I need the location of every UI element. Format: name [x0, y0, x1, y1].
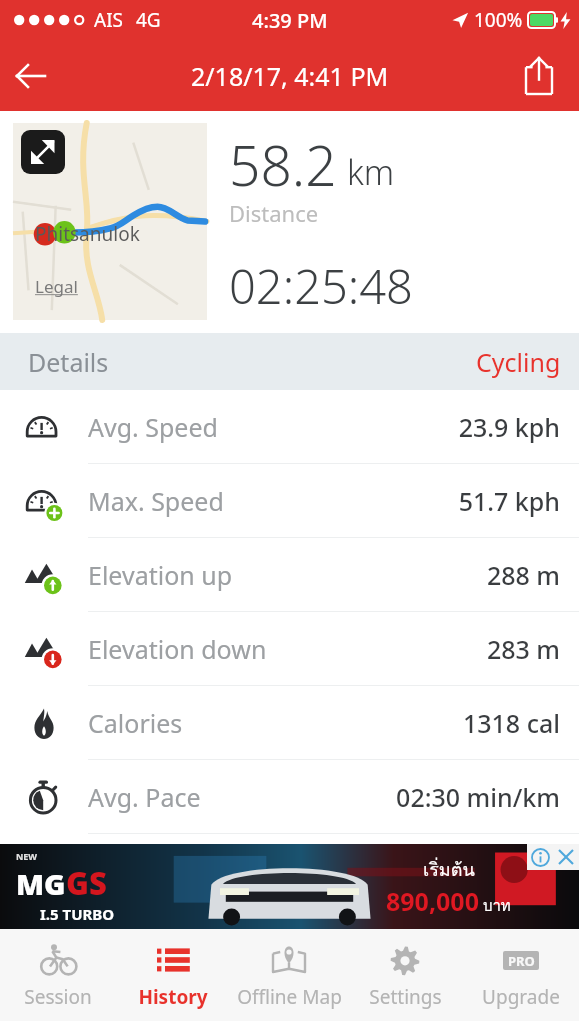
- staticText: Cycling: [476, 345, 561, 379]
- button[interactable]: Avg. Speed: [0, 390, 579, 463]
- staticText: Phitsanulok: [35, 221, 140, 247]
- button[interactable]: Elevation up: [0, 538, 579, 611]
- staticText: 100%: [474, 7, 523, 33]
- staticText: GS: [66, 862, 107, 904]
- staticText: Legal: [35, 275, 78, 298]
- staticText: 51.7 kph: [458, 484, 560, 518]
- button[interactable]: Elevation down: [0, 612, 579, 685]
- staticText: Session: [24, 984, 92, 1010]
- staticText: NEW: [16, 850, 38, 862]
- staticText: Details: [28, 345, 109, 379]
- staticText: Elevation down: [88, 632, 267, 666]
- button[interactable]: Close ad: [553, 844, 579, 870]
- staticText: 02:30 min/km: [396, 780, 560, 814]
- button[interactable]: Ad information: [527, 844, 553, 870]
- staticText: Avg. Pace: [88, 780, 201, 814]
- button[interactable]: Max. Speed: [0, 464, 579, 537]
- staticText: Upgrade: [482, 984, 560, 1010]
- staticText: Distance: [229, 198, 319, 228]
- staticText: 890,000: [386, 884, 479, 918]
- button[interactable]: PRO: [463, 929, 579, 1021]
- button[interactable]: History: [115, 929, 231, 1021]
- staticText: PRO: [508, 952, 535, 970]
- staticText: บาท: [479, 894, 511, 918]
- button[interactable]: Route map: [13, 123, 207, 320]
- staticText: AIS: [94, 7, 124, 33]
- staticText: 2/18/17, 4:41 PM: [191, 59, 389, 93]
- button[interactable]: Back: [0, 46, 60, 106]
- staticText: 283 m: [486, 632, 560, 666]
- staticText: 1318 cal: [462, 706, 560, 740]
- staticText: History: [138, 984, 208, 1010]
- staticText: 23.9 kph: [458, 410, 560, 444]
- button[interactable]: Avg. Pace: [0, 760, 579, 833]
- staticText: Offline Map: [237, 984, 342, 1010]
- staticText: Settings: [369, 984, 442, 1010]
- staticText: MG: [16, 864, 66, 903]
- staticText: 58.2: [229, 127, 337, 202]
- button[interactable]: Calories: [0, 686, 579, 759]
- staticText: I.5 TURBO: [40, 904, 115, 924]
- staticText: Calories: [88, 706, 183, 740]
- staticText: Max. Speed: [88, 484, 224, 518]
- button[interactable]: Session: [0, 929, 115, 1021]
- button[interactable]: Offline Map: [231, 929, 347, 1021]
- button[interactable]: Share: [511, 46, 567, 106]
- staticText: km: [347, 149, 395, 195]
- staticText: Elevation up: [88, 558, 233, 592]
- button[interactable]: Expand map: [21, 130, 65, 174]
- staticText: 02:25:48: [229, 254, 413, 318]
- staticText: 288 m: [486, 558, 560, 592]
- staticText: 4G: [136, 7, 161, 33]
- button[interactable]: Settings: [347, 929, 463, 1021]
- staticText: Avg. Speed: [88, 410, 218, 444]
- staticText: เริ่มต้น: [423, 855, 475, 884]
- staticText: 4:39 PM: [252, 7, 328, 34]
